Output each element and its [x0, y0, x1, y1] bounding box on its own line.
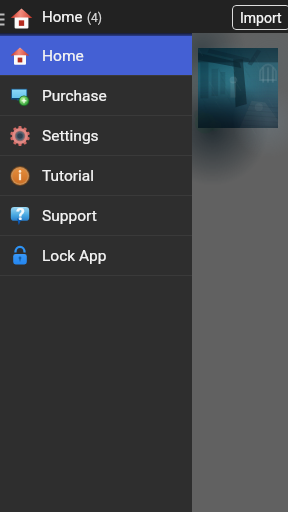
button[interactable]: Home	[9, 6, 33, 30]
button[interactable]: Tutorial	[0, 156, 192, 195]
button[interactable]: Lock App	[0, 236, 192, 275]
button[interactable]: Open navigation drawer	[0, 0, 7, 33]
button[interactable]: Import	[232, 5, 288, 30]
button[interactable]: ?	[0, 196, 192, 235]
staticText: Purchase	[42, 87, 107, 105]
button[interactable]: Home	[0, 36, 192, 75]
staticText: Lock App	[42, 247, 107, 265]
staticText: Support	[42, 207, 97, 225]
staticText: (4)	[87, 11, 103, 25]
staticText: ?	[16, 204, 25, 224]
staticText: Tutorial	[42, 167, 95, 185]
staticText: Import	[240, 10, 282, 26]
button[interactable]: Purchase	[0, 76, 192, 115]
button[interactable]: Photo thumbnail	[198, 48, 278, 128]
staticText: Home	[42, 47, 84, 65]
button[interactable]: Settings	[0, 116, 192, 155]
staticText: Home	[42, 8, 87, 26]
staticText: Settings	[42, 127, 99, 145]
